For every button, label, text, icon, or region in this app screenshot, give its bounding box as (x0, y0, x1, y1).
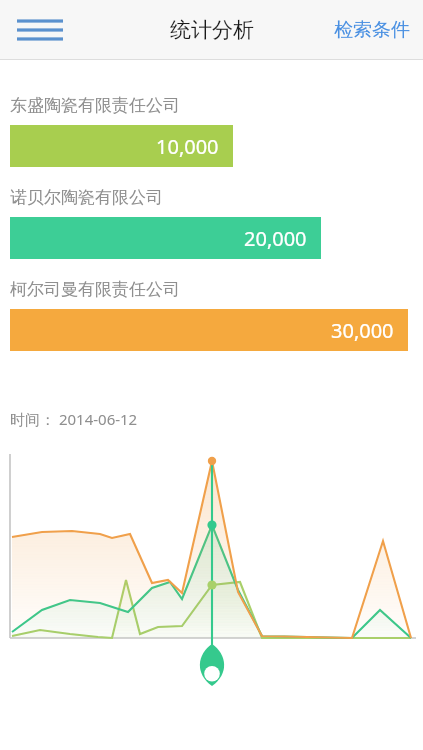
staticText: 20,000 (244, 225, 307, 252)
button[interactable]: 20,000 (10, 217, 321, 259)
button[interactable]: 检索条件 (321, 4, 423, 56)
button[interactable]: Menu (6, 6, 74, 54)
button[interactable]: 30,000 (10, 309, 408, 351)
staticText: 10,000 (156, 133, 219, 160)
staticText: 统计分析 (170, 17, 254, 43)
staticText: 检索条件 (334, 18, 410, 42)
staticText: 柯尔司曼有限责任公司 (10, 279, 180, 300)
staticText: 30,000 (331, 317, 394, 344)
staticText: 时间： 2014-06-12 (10, 409, 138, 429)
staticText: 东盛陶瓷有限责任公司 (10, 95, 180, 116)
staticText: 诺贝尔陶瓷有限公司 (10, 187, 163, 208)
button[interactable]: 10,000 (10, 125, 233, 167)
